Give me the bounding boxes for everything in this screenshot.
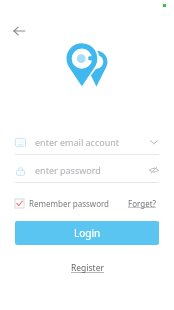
- staticText: enter password: [35, 164, 101, 176]
- staticText: Forget?: [128, 198, 157, 209]
- other: Email: [15, 137, 26, 148]
- button[interactable]: Login: [15, 221, 159, 245]
- staticText: Remember password: [29, 198, 110, 209]
- button[interactable]: Email: [0, 130, 174, 154]
- button[interactable]: Forget?: [126, 195, 159, 212]
- staticText: enter email account: [35, 136, 120, 148]
- other: Show password: [149, 165, 159, 175]
- button[interactable]: Back: [6, 18, 32, 44]
- button[interactable]: Password: [0, 158, 174, 182]
- other: Show accounts: [149, 137, 159, 147]
- button[interactable]: Remember password: [15, 195, 110, 212]
- other: Password: [15, 165, 26, 176]
- staticText: Login: [74, 226, 101, 240]
- staticText: Register: [71, 262, 104, 274]
- button[interactable]: Register: [65, 259, 110, 277]
